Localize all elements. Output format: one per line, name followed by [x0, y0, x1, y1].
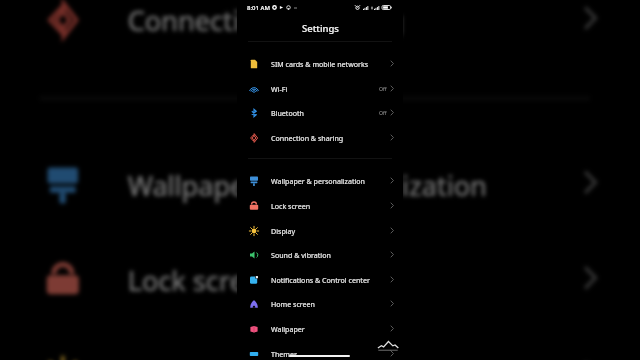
staticText: Home screen: [271, 299, 316, 309]
staticText: Wallpaper & personalization: [271, 176, 365, 186]
button[interactable]: Bluetooth: [237, 100, 403, 125]
staticText: Settings: [302, 22, 339, 35]
staticText: Lock screen: [128, 261, 280, 299]
button[interactable]: Themes: [237, 341, 403, 360]
staticText: Notifications & Control center: [271, 275, 370, 285]
staticText: Wi-Fi: [271, 84, 288, 94]
staticText: Themes: [271, 349, 298, 359]
staticText: Connection & sharing: [271, 133, 344, 143]
button[interactable]: SIM cards & mobile networks: [237, 51, 403, 76]
staticText: Wallpaper: [271, 324, 305, 334]
staticText: 8:01 AM: [247, 4, 270, 12]
button[interactable]: Display: [237, 218, 403, 243]
staticText: Display: [271, 226, 296, 236]
staticText: Connection & sharing: [128, 1, 407, 39]
staticText: Wallpaper & personalization: [128, 165, 487, 203]
staticText: Off: [379, 109, 387, 116]
button[interactable]: Connection & sharing: [237, 125, 403, 150]
button[interactable]: Lock screen: [237, 193, 403, 218]
staticText: SIM cards & mobile networks: [271, 59, 369, 69]
button[interactable]: Home screen: [237, 291, 403, 316]
staticText: Sound & vibration: [271, 250, 331, 260]
staticText: Lock screen: [271, 201, 311, 211]
button[interactable]: Wi-Fi: [237, 76, 403, 101]
staticText: Bluetooth: [271, 108, 304, 118]
button[interactable]: Sound & vibration: [237, 242, 403, 267]
button[interactable]: Wallpaper & personalization: [237, 168, 403, 193]
button[interactable]: Notifications & Control center: [237, 267, 403, 292]
button[interactable]: Wallpaper: [237, 316, 403, 341]
staticText: Off: [379, 85, 387, 92]
